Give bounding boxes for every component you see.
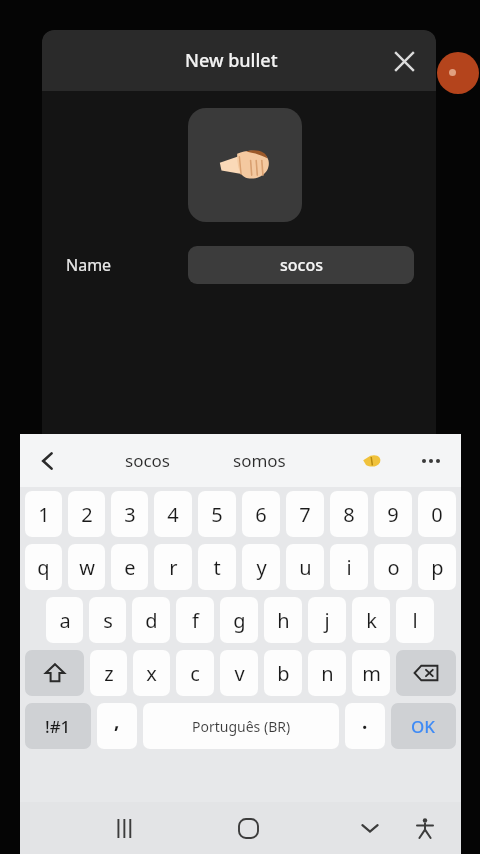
button[interactable]: socos	[108, 434, 188, 487]
staticText: i	[346, 554, 352, 581]
button[interactable]: u	[286, 544, 324, 590]
button[interactable]: i	[330, 544, 368, 590]
staticText: socos	[125, 449, 171, 472]
staticText: ,	[114, 708, 120, 734]
button[interactable]: c	[176, 650, 214, 696]
button[interactable]: x	[133, 650, 170, 696]
button[interactable]: a	[46, 597, 83, 643]
staticText: u	[299, 554, 312, 581]
staticText: v	[234, 660, 245, 687]
staticText: a	[59, 607, 71, 634]
staticText: n	[321, 660, 334, 687]
staticText: 5	[211, 501, 223, 528]
button[interactable]: z	[90, 650, 127, 696]
staticText: 9	[387, 501, 399, 528]
button[interactable]: ,	[97, 703, 137, 749]
button[interactable]: Accessibility	[403, 806, 447, 850]
button[interactable]: w	[68, 544, 105, 590]
button[interactable]: g	[220, 597, 258, 643]
button[interactable]: .	[345, 703, 385, 749]
staticText: 1	[38, 501, 50, 528]
staticText: r	[169, 554, 178, 581]
staticText: c	[190, 660, 200, 687]
button[interactable]: 9	[374, 491, 412, 537]
staticText: j	[324, 607, 330, 634]
button[interactable]: r	[154, 544, 192, 590]
button[interactable]: f	[176, 597, 214, 643]
button[interactable]: Back	[28, 441, 68, 481]
staticText: 8	[343, 501, 355, 528]
button[interactable]: l	[396, 597, 434, 643]
staticText: w	[79, 554, 95, 581]
button[interactable]: 4	[154, 491, 192, 537]
staticText: 6	[255, 501, 267, 528]
button[interactable]: 5	[198, 491, 236, 537]
button[interactable]: socos	[188, 246, 414, 284]
staticText: s	[103, 607, 113, 634]
button[interactable]: !#1	[25, 703, 91, 749]
staticText: 2	[81, 501, 93, 528]
button[interactable]: n	[308, 650, 346, 696]
button[interactable]: Shift	[25, 650, 84, 696]
button[interactable]: s	[89, 597, 126, 643]
button[interactable]: 2	[68, 491, 105, 537]
button[interactable]: m	[352, 650, 390, 696]
button[interactable]: 0	[418, 491, 456, 537]
button[interactable]: j	[308, 597, 346, 643]
button[interactable]: OK	[391, 703, 456, 749]
staticText: p	[431, 554, 444, 581]
button[interactable]: Recents	[94, 802, 154, 854]
button[interactable]: e	[111, 544, 148, 590]
button[interactable]: somos	[219, 434, 299, 487]
button[interactable]: 6	[242, 491, 280, 537]
staticText: y	[256, 554, 267, 581]
staticText: h	[277, 607, 290, 634]
staticText: OK	[411, 715, 436, 738]
staticText: somos	[233, 449, 286, 472]
staticText: z	[104, 660, 114, 687]
staticText: d	[145, 607, 158, 634]
button[interactable]: v	[220, 650, 258, 696]
staticText: l	[412, 607, 418, 634]
staticText: g	[233, 607, 246, 634]
button[interactable]: Português (BR)	[143, 703, 339, 749]
staticText: q	[37, 554, 50, 581]
staticText: !#1	[45, 715, 71, 738]
staticText: Name	[66, 254, 112, 276]
button[interactable]: 1	[25, 491, 62, 537]
button[interactable]: More options	[409, 439, 453, 483]
staticText: o	[387, 554, 400, 581]
staticText: t	[213, 554, 221, 581]
button[interactable]: o	[374, 544, 412, 590]
button[interactable]: 8	[330, 491, 368, 537]
staticText: f	[192, 607, 199, 634]
staticText: x	[146, 660, 157, 687]
button[interactable]: 7	[286, 491, 324, 537]
button[interactable]: q	[25, 544, 62, 590]
button[interactable]: d	[132, 597, 170, 643]
button[interactable]: Hide keyboard	[340, 802, 400, 854]
button[interactable]: Choose icon	[188, 108, 302, 222]
staticText: 4	[167, 501, 179, 528]
button[interactable]: b	[264, 650, 302, 696]
staticText: e	[124, 554, 136, 581]
button[interactable]: Home	[218, 802, 278, 854]
staticText: m	[362, 660, 381, 687]
staticText: socos	[280, 254, 323, 276]
button[interactable]: k	[352, 597, 390, 643]
button[interactable]: h	[264, 597, 302, 643]
staticText: k	[366, 607, 377, 634]
staticText: 0	[431, 501, 443, 528]
staticText: .	[362, 709, 368, 735]
staticText: Português (BR)	[192, 717, 291, 736]
button[interactable]: p	[418, 544, 456, 590]
staticText: b	[277, 660, 290, 687]
staticText: 3	[124, 501, 136, 528]
button[interactable]: t	[198, 544, 236, 590]
button[interactable]: Backspace	[396, 650, 456, 696]
staticText: New bullet	[185, 48, 278, 73]
button[interactable]: 3	[111, 491, 148, 537]
button[interactable]: Close	[384, 41, 424, 81]
button[interactable]: y	[242, 544, 280, 590]
button[interactable]: Emoji suggestion	[350, 434, 394, 487]
